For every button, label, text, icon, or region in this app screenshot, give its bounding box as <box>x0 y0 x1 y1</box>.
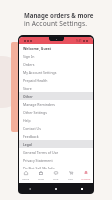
button[interactable]: General Terms of Use <box>19 148 93 156</box>
staticText: Sign In <box>23 54 35 59</box>
button[interactable]: Sign In <box>19 52 93 60</box>
staticText: Orders <box>23 62 35 67</box>
button[interactable]: Shop <box>33 169 48 182</box>
button[interactable]: Feedback <box>19 132 93 140</box>
button[interactable]: Help <box>19 116 93 124</box>
button[interactable]: Chat <box>48 169 63 182</box>
button[interactable]: Privacy Statement <box>19 156 93 164</box>
button[interactable]: My Account Settings <box>19 68 93 76</box>
staticText: Contact Us <box>23 126 41 131</box>
button[interactable]: Account <box>78 169 93 182</box>
staticText: in Account Settings. <box>24 19 88 28</box>
staticText: Store <box>23 86 32 91</box>
staticText: Help <box>23 118 31 123</box>
staticText: Other <box>23 94 33 98</box>
staticText: Account <box>81 177 91 180</box>
button[interactable]: Welcome, Guest <box>19 44 93 52</box>
staticText: Do Not Sell My Info <box>23 166 55 171</box>
button[interactable]: Contact Us <box>19 124 93 132</box>
staticText: Prepaid Health <box>23 78 48 83</box>
staticText: My Account Settings <box>23 70 57 75</box>
button[interactable]: Home <box>19 169 33 182</box>
button[interactable]: Cart <box>63 169 78 182</box>
staticText: Privacy Statement <box>23 158 53 163</box>
staticText: Feedback <box>23 134 39 139</box>
staticText: Manage orders & more <box>24 11 94 19</box>
staticText: Welcome, Guest <box>23 46 52 51</box>
button[interactable]: Prepaid Health <box>19 76 93 84</box>
staticText: Other Settings <box>23 110 47 115</box>
staticText: Manage Reminders <box>23 102 56 107</box>
button[interactable]: Orders <box>19 60 93 68</box>
button[interactable]: Other Settings <box>19 108 93 116</box>
staticText: Cart <box>68 177 73 180</box>
staticText: Legal <box>23 142 32 146</box>
staticText: General Terms of Use <box>23 150 59 155</box>
button[interactable]: Do Not Sell My Info <box>19 164 93 172</box>
staticText: Shop <box>38 177 44 180</box>
button[interactable]: Manage Reminders <box>19 100 93 108</box>
button[interactable]: Store <box>19 84 93 92</box>
staticText: 9:41 <box>76 39 82 43</box>
staticText: Home <box>22 177 30 180</box>
staticText: Chat <box>53 177 59 180</box>
